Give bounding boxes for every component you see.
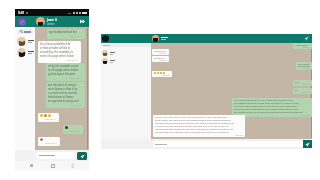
staticText: 10:24 AM ✓✓ — [70, 35, 83, 38]
staticText: at it — [295, 89, 299, 91]
staticText: 10:24 AM ✓✓ — [70, 104, 83, 107]
button[interactable]: Send message — [303, 35, 310, 42]
staticText: s a more or less normal — [48, 91, 78, 95]
button[interactable]: Jane S — [15, 16, 89, 27]
staticText: ed by the rea — [298, 63, 310, 65]
staticText: shed fact that — [154, 50, 166, 52]
staticText: a long establis — [295, 44, 308, 46]
staticText: ntent of a page when lookin — [40, 54, 75, 58]
staticText: like readable English many desktop publi… — [234, 111, 303, 114]
staticText: using content here making it look like r… — [155, 119, 232, 122]
button[interactable]: Recents — [27, 161, 36, 170]
button[interactable] — [153, 141, 303, 147]
staticText: psum is that it has a more or less norma… — [155, 116, 228, 119]
staticText: 9:41 — [18, 11, 25, 15]
staticText: 10:24 AM ✓✓ — [66, 59, 79, 62]
staticText: 10:24 AM — [159, 52, 167, 54]
button[interactable] — [101, 50, 151, 56]
staticText: stracted by the readable co — [40, 50, 73, 54]
staticText: the readable content of a page when look… — [234, 102, 299, 105]
staticText: 10:24 AM ✓✓ — [70, 77, 83, 80]
staticText: distribution of letters — [48, 95, 75, 99]
button[interactable] — [15, 36, 35, 47]
staticText: orem Ipsum is that it ha — [48, 87, 78, 91]
button[interactable]: Profile — [102, 35, 109, 42]
staticText: 10:24 AM ✓✓ — [45, 142, 58, 145]
staticText: Jane S — [47, 17, 57, 22]
staticText: 10:24 AM ✓✓ — [68, 130, 81, 133]
staticText: 10:24 AM — [302, 67, 310, 69]
staticText: 10:24 AM — [302, 91, 310, 93]
button[interactable]: Send — [303, 140, 312, 148]
staticText: out the point of using L — [48, 83, 77, 87]
staticText: 10:24 AM — [162, 74, 170, 76]
staticText: bution of letters as opposed to using co… — [234, 108, 299, 111]
staticText: g at its layout the poin — [48, 72, 76, 76]
button[interactable] — [101, 58, 151, 64]
staticText: l be distracted by the readable content … — [155, 131, 229, 134]
staticText: 10:24 AM — [302, 46, 310, 48]
button[interactable]: Send — [77, 152, 87, 160]
staticText: online — [47, 22, 55, 26]
staticText: der will be di — [154, 57, 165, 59]
staticText: ed by the readable conte — [48, 64, 79, 68]
button[interactable] — [36, 152, 75, 159]
staticText: as opposed to using cont — [48, 99, 79, 103]
button[interactable]: Back — [68, 161, 77, 170]
staticText: 10:24 AM — [302, 114, 310, 116]
button[interactable] — [15, 47, 35, 58]
staticText: 4G — [68, 11, 72, 14]
staticText: 10:24 AM — [159, 59, 167, 61]
staticText: It is a long established fact that a rea… — [234, 99, 295, 102]
staticText: n loo — [295, 81, 300, 83]
staticText: 10:24 AM ✓✓ — [44, 118, 57, 121]
staticText: It is a long established fa — [40, 42, 71, 46]
button[interactable] — [17, 29, 33, 34]
staticText: rious versions have evolved over the yea… — [155, 128, 234, 131]
staticText: d a search for lorem ipsum will uncover … — [155, 125, 228, 128]
staticText: dable content — [298, 65, 310, 67]
staticText: packages and web page editors now use Lo… — [155, 122, 235, 125]
button[interactable]: Home — [48, 161, 57, 170]
staticText: t of using Lorem Ipsum is that it has a … — [234, 105, 298, 108]
button[interactable]: Forward — [78, 17, 87, 26]
staticText: 10:24 AM — [235, 134, 243, 136]
staticText: nt of a page when lookin — [48, 68, 79, 72]
staticText: ng established fact tha — [49, 30, 77, 34]
staticText: ct that a reader will be di — [40, 46, 71, 50]
staticText: 10:24 AM — [302, 83, 310, 85]
